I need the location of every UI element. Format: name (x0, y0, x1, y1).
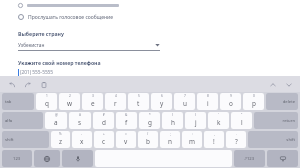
button[interactable]: % (51, 131, 70, 148)
staticText: s (78, 118, 82, 127)
button[interactable]: . (226, 131, 246, 148)
button[interactable] (0, 1, 300, 9)
button[interactable]: / (138, 131, 158, 148)
staticText: 6 (161, 94, 163, 98)
button[interactable]: 2 (59, 93, 80, 110)
staticText: : (192, 132, 193, 136)
staticText: 2 (69, 94, 71, 98)
staticText: , (214, 132, 215, 136)
button[interactable]: 7 (174, 93, 195, 110)
button[interactable]: 0 (243, 93, 264, 110)
staticText: x (80, 137, 84, 146)
staticText: p (252, 99, 256, 108)
staticText: 1 (46, 94, 48, 98)
button[interactable]: ( (162, 112, 183, 129)
staticText: r (114, 99, 117, 108)
staticText: - (81, 132, 83, 136)
staticText: ( (172, 113, 173, 117)
button[interactable]: 5 (128, 93, 149, 110)
button[interactable]: Next field (283, 79, 294, 90)
staticText: j (195, 118, 197, 127)
staticText: i (207, 99, 209, 108)
staticText: shift (5, 137, 14, 143)
button[interactable]: Previous field (267, 79, 278, 90)
button[interactable]: Dictate (62, 150, 93, 167)
staticText: h (171, 118, 175, 127)
staticText: alfa (5, 118, 13, 124)
staticText: @ (55, 113, 58, 117)
button[interactable]: 8 (197, 93, 218, 110)
button[interactable]: @ (45, 112, 67, 129)
staticText: .?123 (244, 156, 255, 162)
staticText: 4 (115, 94, 117, 98)
button[interactable]: Paste (38, 79, 49, 90)
staticText: Укажите свой номер телефона (18, 59, 101, 66)
button[interactable]: ₽ (93, 112, 114, 129)
staticText: u (183, 99, 187, 108)
staticText: ' (218, 113, 219, 117)
staticText: 7 (184, 94, 186, 98)
button[interactable]: = (116, 131, 136, 148)
staticText: Прослушать голосовое сообщение (28, 14, 113, 21)
staticText: = (125, 132, 127, 136)
button[interactable]: Hide keyboard (267, 150, 298, 167)
button[interactable]: 4 (105, 93, 126, 110)
button[interactable]: return (254, 112, 298, 129)
button[interactable]: & (116, 112, 137, 129)
staticText: ; (170, 132, 171, 136)
button[interactable]: shift (2, 131, 49, 148)
staticText: ) (195, 113, 196, 117)
staticText: a (54, 118, 58, 127)
button[interactable]: Undo (6, 79, 17, 90)
staticText: o (229, 99, 233, 108)
button[interactable]: shift (248, 131, 298, 148)
staticText: b (146, 137, 150, 146)
button[interactable]: .?123 (234, 150, 265, 167)
staticText: q (45, 99, 49, 108)
button[interactable]: : (182, 131, 202, 148)
button[interactable]: 1 (36, 93, 57, 110)
staticText: & (125, 113, 128, 117)
button[interactable]: alfa (2, 112, 43, 129)
staticText: 123 (13, 156, 21, 162)
staticText: # (79, 113, 82, 117)
button[interactable]: 6 (151, 93, 172, 110)
other: Open country list (155, 43, 160, 47)
staticText: + (103, 132, 105, 136)
staticText: 9 (230, 94, 232, 98)
staticText: m (189, 137, 195, 146)
staticText: ! (213, 137, 215, 146)
button[interactable]: ' (208, 112, 229, 129)
staticText: f (125, 118, 128, 127)
button[interactable]: Switch keyboard (34, 150, 60, 167)
staticText: d (102, 118, 106, 127)
button[interactable]: 123 (2, 150, 32, 167)
button[interactable]: - (72, 131, 92, 148)
staticText: shift (286, 137, 295, 143)
staticText: g (148, 118, 152, 127)
button[interactable]: ) (185, 112, 206, 129)
button[interactable]: , (204, 131, 224, 148)
button[interactable]: Redo (22, 79, 33, 90)
button[interactable]: 3 (82, 93, 103, 110)
button[interactable]: delete (266, 93, 298, 110)
staticText: 8 (207, 94, 209, 98)
staticText: v (124, 137, 128, 146)
button[interactable]: * (139, 112, 160, 129)
staticText: (201) 555-5555 (20, 69, 54, 76)
staticText: n (168, 137, 172, 146)
button[interactable]: Прослушать голосовое сообщение (0, 12, 300, 22)
button[interactable]: + (94, 131, 114, 148)
button[interactable]: 9 (220, 93, 241, 110)
button[interactable]: (201) 555-5555 (18, 69, 160, 76)
button[interactable]: tab (2, 93, 34, 110)
staticText: Узбекистан (18, 42, 45, 49)
button[interactable]: # (69, 112, 91, 129)
button[interactable]: ; (160, 131, 180, 148)
button[interactable]: " (231, 112, 252, 129)
button[interactable]: Узбекистан (18, 40, 160, 50)
staticText: / (147, 132, 149, 136)
staticText: return (282, 118, 295, 124)
staticText: y (160, 99, 164, 108)
